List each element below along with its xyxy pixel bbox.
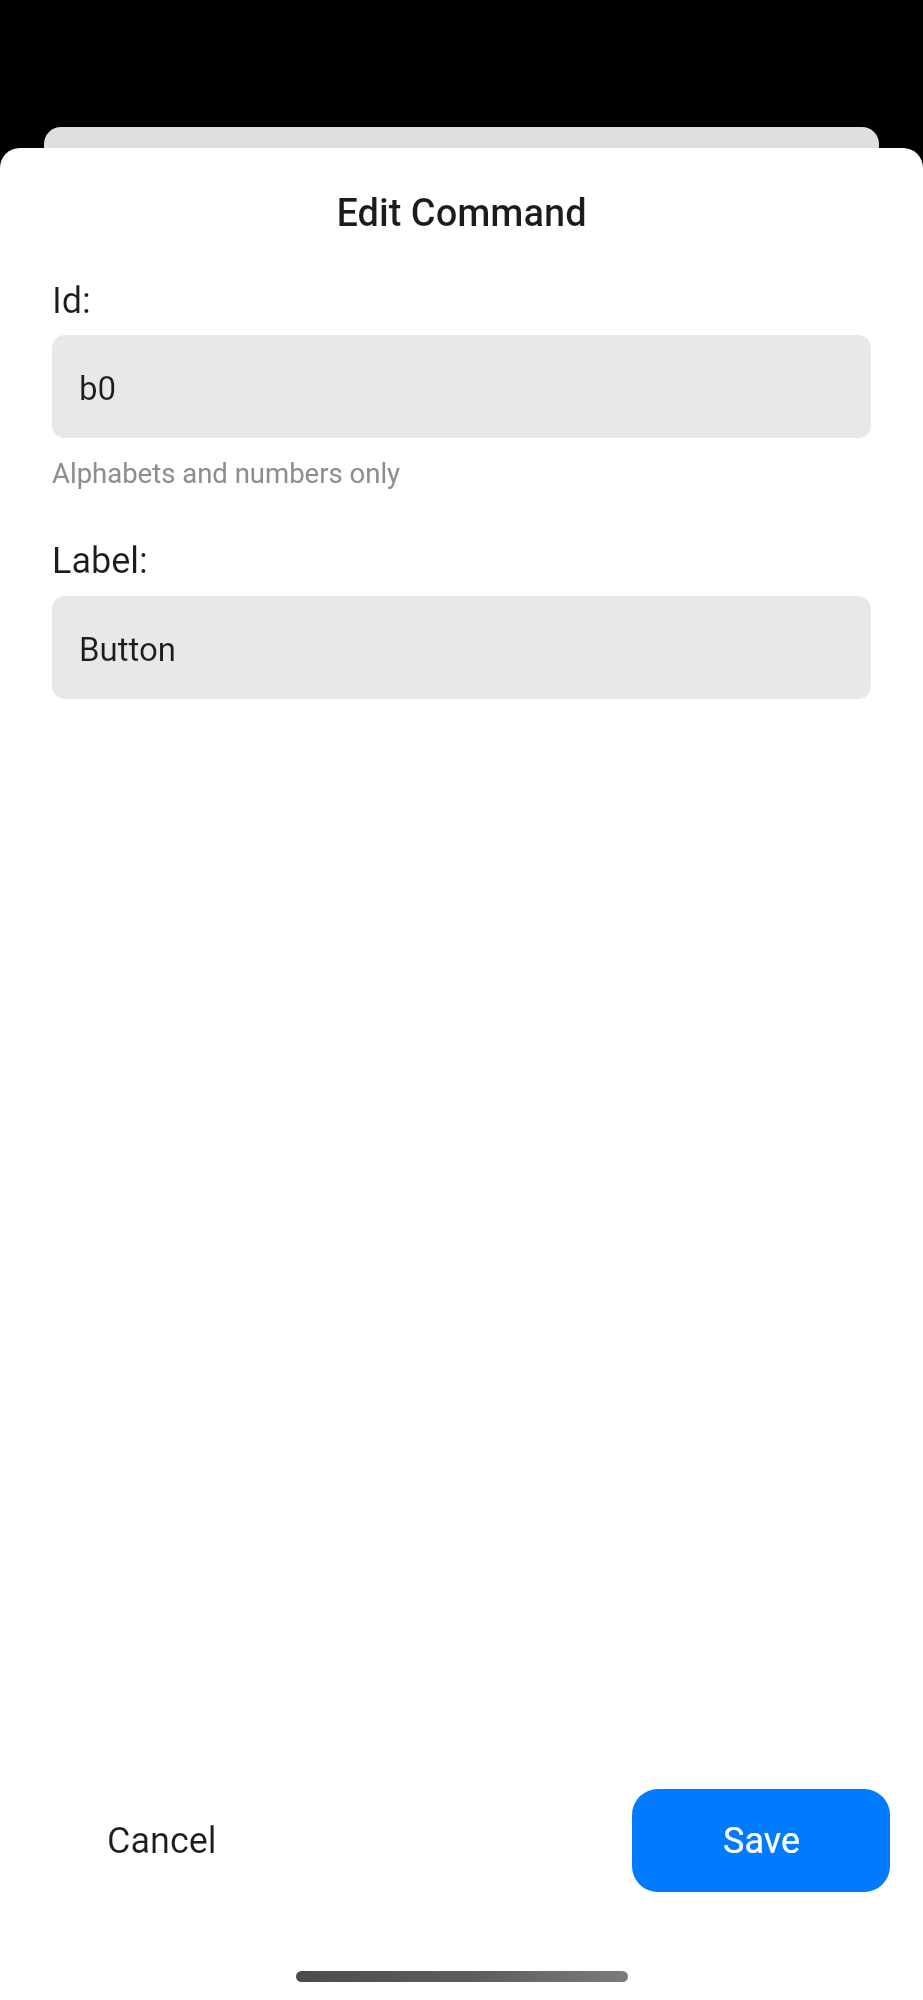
other: Home indicator (296, 1971, 628, 1982)
staticText: Id: (52, 280, 91, 322)
staticText: Label: (52, 540, 148, 582)
staticText: Alphabets and numbers only (52, 457, 401, 489)
staticText: b0 (79, 369, 117, 408)
staticText: Save (723, 1820, 800, 1862)
staticText: Cancel (107, 1820, 217, 1862)
staticText: Button (79, 630, 177, 669)
button[interactable]: Label text field (52, 596, 871, 699)
button[interactable]: Id text field (52, 335, 871, 438)
button[interactable]: Cancel (52, 1792, 272, 1890)
button[interactable]: Save (632, 1789, 890, 1892)
staticText: Edit Command (0, 191, 923, 236)
